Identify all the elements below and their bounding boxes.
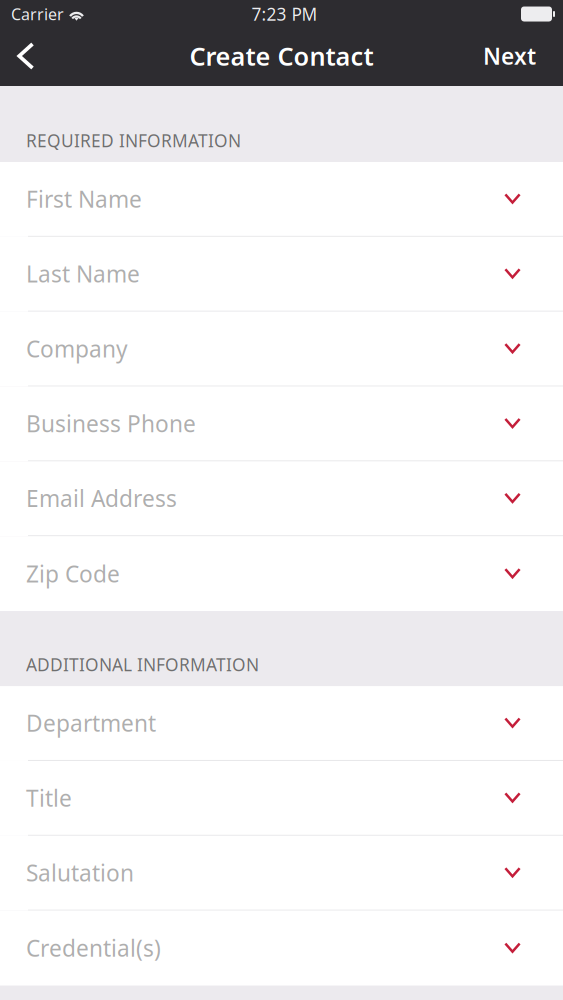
button[interactable]: Title: [0, 761, 563, 836]
staticText: Title: [26, 783, 72, 813]
button[interactable]: Zip Code: [0, 536, 563, 611]
staticText: ADDITIONAL INFORMATION: [26, 653, 259, 676]
button[interactable]: Credential(s): [0, 911, 563, 985]
staticText: Create Contact: [189, 39, 373, 73]
button[interactable]: Department: [0, 686, 563, 761]
button[interactable]: Company: [0, 312, 563, 386]
staticText: 7:23 PM: [251, 2, 317, 25]
staticText: Business Phone: [26, 408, 196, 438]
staticText: Zip Code: [26, 559, 120, 589]
button[interactable]: First Name: [0, 162, 563, 237]
staticText: REQUIRED INFORMATION: [26, 129, 241, 152]
button[interactable]: Next: [463, 28, 563, 84]
staticText: Email Address: [26, 483, 177, 513]
button[interactable]: Back: [0, 28, 58, 84]
button[interactable]: Email Address: [0, 461, 563, 536]
staticText: Salutation: [26, 858, 134, 888]
button[interactable]: Business Phone: [0, 386, 563, 461]
staticText: Last Name: [26, 259, 140, 289]
staticText: First Name: [26, 184, 142, 214]
staticText: Company: [26, 334, 128, 364]
staticText: Carrier: [11, 3, 64, 25]
button[interactable]: Last Name: [0, 237, 563, 312]
staticText: Next: [483, 41, 536, 71]
button[interactable]: Salutation: [0, 836, 563, 911]
staticText: Credential(s): [26, 933, 161, 963]
staticText: Department: [26, 708, 156, 738]
